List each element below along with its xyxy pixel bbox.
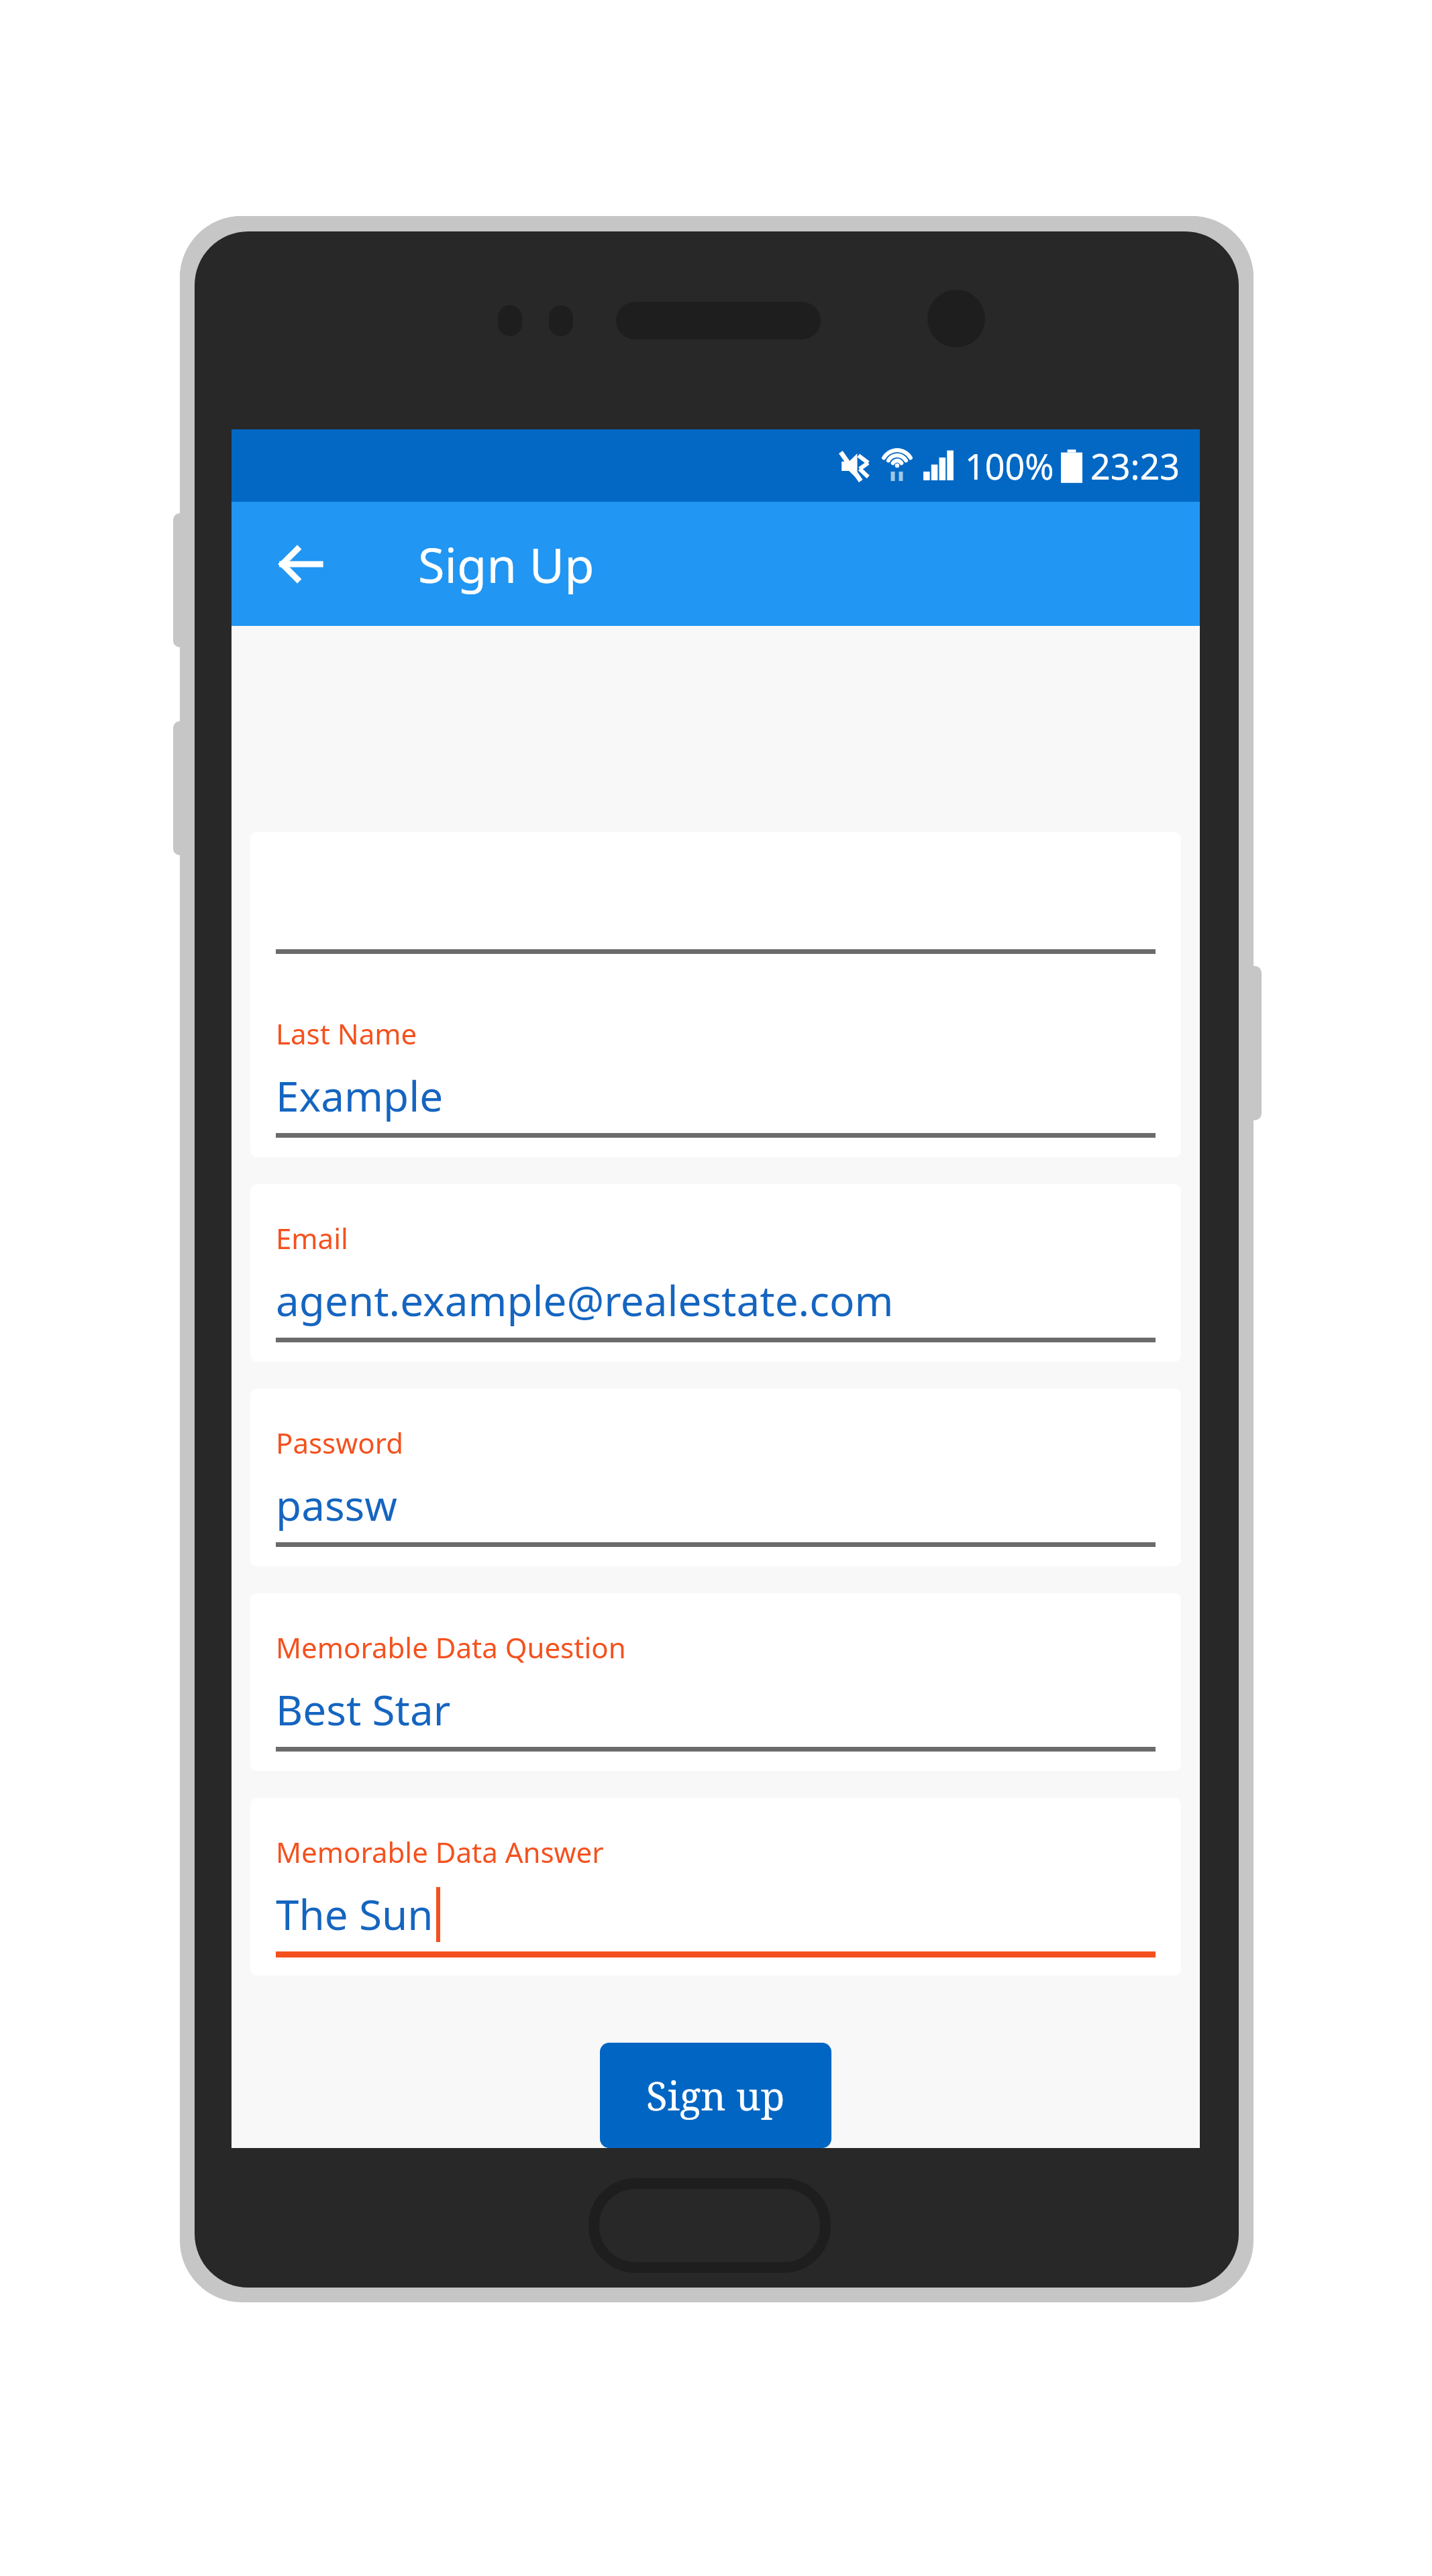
staticText: 100% xyxy=(965,442,1054,490)
staticText: Email xyxy=(276,1219,348,1257)
button[interactable]: Memorable Data Answer xyxy=(250,1798,1181,1976)
button[interactable]: Last Name xyxy=(250,979,1181,1157)
staticText: agent.example@realestate.com xyxy=(276,1272,894,1328)
staticText: Memorable Data Question xyxy=(276,1628,626,1666)
staticText: Memorable Data Answer xyxy=(276,1833,604,1871)
staticText: Password xyxy=(276,1424,403,1462)
staticText: Best Star xyxy=(276,1681,451,1737)
staticText: Last Name xyxy=(276,1014,417,1053)
staticText: passw xyxy=(276,1477,398,1533)
button[interactable]: Password xyxy=(250,1389,1181,1566)
button[interactable]: Email xyxy=(250,1184,1181,1362)
staticText: 23:23 xyxy=(1090,442,1180,490)
staticText: Example xyxy=(276,1067,444,1124)
button[interactable]: Sign up xyxy=(600,2043,831,2148)
staticText: The Sun xyxy=(276,1886,433,1942)
button[interactable]: Back xyxy=(270,534,331,594)
staticText: Sign up xyxy=(646,2069,785,2122)
staticText: Sign Up xyxy=(418,531,595,597)
button[interactable]: Memorable Data Question xyxy=(250,1593,1181,1771)
